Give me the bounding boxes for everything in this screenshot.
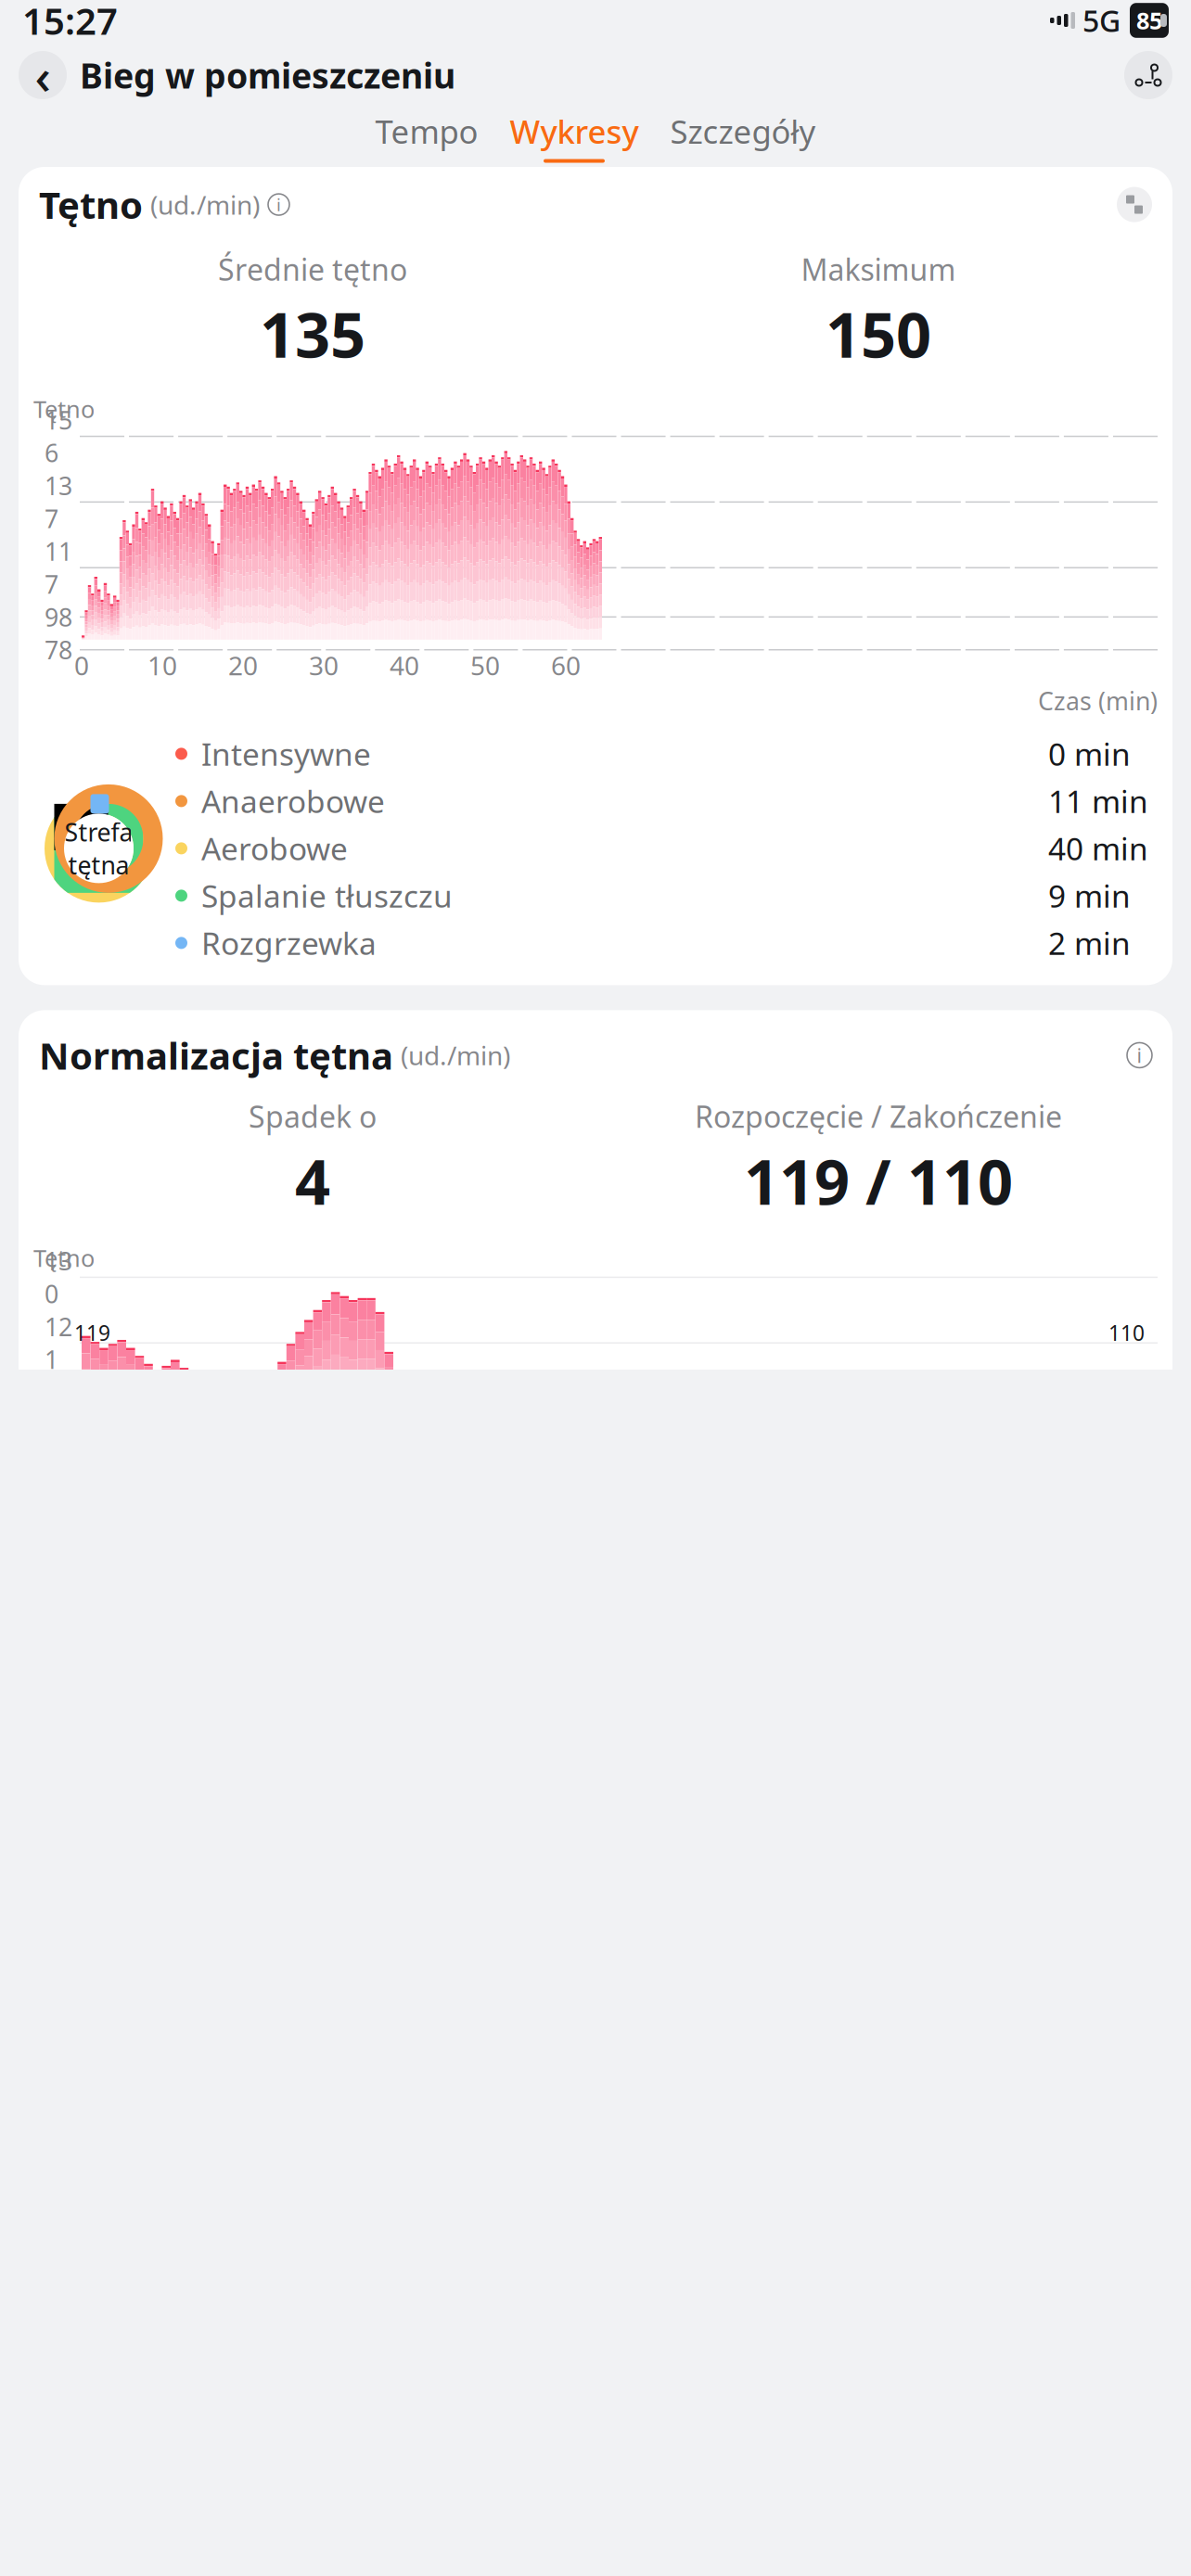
button[interactable]: Wstecz <box>19 51 67 99</box>
staticText: Spadek o <box>249 1097 377 1136</box>
button[interactable]: Udostępnij <box>1124 51 1172 99</box>
staticText: 11 min <box>1048 780 1148 822</box>
staticText: 121 <box>45 1310 72 1376</box>
staticText: Tętno <box>39 180 143 229</box>
staticText: Spalanie tłuszczu <box>201 875 453 916</box>
staticText: 150 <box>826 293 931 375</box>
staticText: Aerobowe <box>201 828 348 869</box>
staticText: Wykresy <box>510 110 639 153</box>
button[interactable]: Informacje o normalizacji tętna <box>1127 1043 1152 1068</box>
staticText: 135 <box>260 293 365 375</box>
staticText: Tempo <box>375 110 478 153</box>
staticText: Średnie tętno <box>218 250 407 289</box>
staticText: 156 <box>45 403 72 469</box>
staticText: 10 <box>147 648 177 682</box>
staticText: 2 min <box>1048 922 1131 963</box>
button[interactable]: Szczegóły <box>670 110 816 163</box>
staticText: 0 <box>74 648 89 682</box>
staticText: 110 <box>1108 1319 1145 1347</box>
staticText: Rozgrzewka <box>201 922 377 963</box>
staticText: Tętno <box>33 393 95 424</box>
staticText: 30 <box>309 648 339 682</box>
staticText: 85 <box>1136 5 1162 36</box>
staticText: 60 <box>551 648 581 682</box>
staticText: Tętno <box>33 1242 95 1273</box>
staticText: Anaerobowe <box>201 780 385 822</box>
staticText: Szczegóły <box>670 110 816 153</box>
staticText: 20 <box>228 648 258 682</box>
staticText: 5G <box>1082 1 1121 40</box>
button[interactable]: Informacje o tętnie <box>268 194 289 215</box>
staticText: Normalizacja tętna <box>39 1031 393 1080</box>
button[interactable]: Tempo <box>375 110 478 163</box>
button[interactable]: Powiększ wykres <box>1117 187 1152 222</box>
staticText: ‹ <box>35 42 51 108</box>
staticText: 98 <box>45 601 72 633</box>
staticText: 0 min <box>1048 733 1131 774</box>
staticText: tętna <box>68 848 129 881</box>
staticText: 119 / 110 <box>744 1140 1013 1222</box>
staticText: Strefa <box>64 816 133 848</box>
button[interactable]: Wykresy <box>510 110 639 163</box>
staticText: (ud./min) <box>401 1038 510 1072</box>
staticText: Bieg w pomieszczeniu <box>80 52 455 98</box>
staticText: 137 <box>45 469 72 535</box>
staticText: 9 min <box>1048 875 1131 916</box>
staticText: 130 <box>45 1244 72 1310</box>
staticText: Intensywne <box>201 733 371 774</box>
staticText: 119 <box>74 1319 110 1347</box>
staticText: 78 <box>45 633 72 666</box>
staticText: i <box>276 193 281 216</box>
staticText: Rozpoczęcie / Zakończenie <box>695 1097 1062 1136</box>
staticText: Maksimum <box>801 250 956 289</box>
staticText: 117 <box>45 535 72 601</box>
staticText: 15:27 <box>22 0 118 45</box>
staticText: 4 <box>295 1140 330 1222</box>
staticText: 50 <box>470 648 500 682</box>
staticText: i <box>1137 1042 1142 1068</box>
staticText: Czas (min) <box>1038 684 1158 717</box>
staticText: 40 min <box>1048 828 1148 869</box>
staticText: 40 <box>390 648 419 682</box>
staticText: (ud./min) <box>150 187 260 222</box>
